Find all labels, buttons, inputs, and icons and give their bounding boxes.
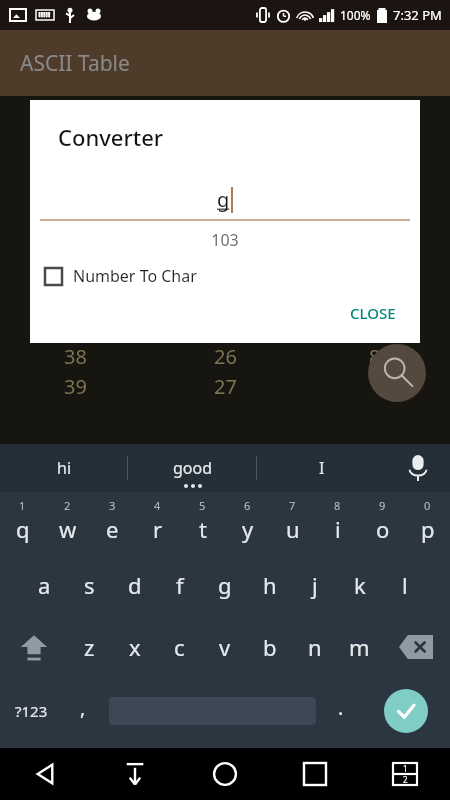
button[interactable]: j <box>292 554 337 616</box>
button[interactable]: Recent apps <box>270 748 360 800</box>
staticText: 8 <box>334 498 341 513</box>
staticText: , <box>80 694 86 721</box>
button[interactable]: b <box>247 616 292 678</box>
button[interactable]: n <box>292 616 337 678</box>
staticText: 6 <box>244 498 251 513</box>
staticText: w <box>59 514 77 544</box>
button[interactable]: x <box>112 616 157 678</box>
button[interactable]: d <box>112 554 157 616</box>
staticText: 26 <box>214 343 237 370</box>
staticText: p <box>421 514 435 544</box>
button[interactable]: Back <box>0 748 90 800</box>
button[interactable]: k <box>337 554 382 616</box>
staticText: 7:32 PM <box>393 6 442 24</box>
staticText: Number To Char <box>73 265 197 287</box>
button[interactable]: 2 <box>45 492 90 554</box>
button[interactable]: Number To Char <box>30 263 420 289</box>
staticText: ASCII Table <box>20 49 130 78</box>
button[interactable]: 8 <box>315 492 360 554</box>
staticText: z <box>84 632 95 662</box>
button[interactable]: 5 <box>180 492 225 554</box>
staticText: s <box>84 570 95 600</box>
staticText: hi <box>57 457 72 479</box>
staticText: 8 <box>369 343 381 370</box>
staticText: q <box>16 514 30 544</box>
staticText: i <box>335 514 341 544</box>
button[interactable]: Space <box>103 678 321 744</box>
button[interactable]: 0 <box>405 492 450 554</box>
staticText: 2 <box>64 498 71 513</box>
staticText: 3 <box>109 498 116 513</box>
staticText: a <box>38 570 51 600</box>
button[interactable]: h <box>247 554 292 616</box>
staticText: g <box>217 186 230 213</box>
staticText: 0 <box>424 498 431 513</box>
staticText: k <box>354 570 366 600</box>
button[interactable]: 9 <box>360 492 405 554</box>
staticText: g <box>218 570 232 600</box>
button[interactable]: s <box>67 554 112 616</box>
button[interactable]: Backspace <box>382 616 450 678</box>
button[interactable]: m <box>337 616 382 678</box>
staticText: I <box>319 457 325 479</box>
button[interactable]: z <box>67 616 112 678</box>
button[interactable]: 6 <box>225 492 270 554</box>
button[interactable]: a <box>22 554 67 616</box>
button[interactable]: 7 <box>270 492 315 554</box>
staticText: . <box>338 694 344 721</box>
button[interactable]: hi <box>0 444 128 492</box>
staticText: 5 <box>199 498 206 513</box>
button[interactable]: CLOSE <box>338 297 408 329</box>
button[interactable]: 3 <box>90 492 135 554</box>
button[interactable]: l <box>382 554 427 616</box>
staticText: o <box>376 514 390 544</box>
button[interactable]: , <box>63 678 103 744</box>
staticText: Converter <box>58 122 164 152</box>
staticText: b <box>263 632 277 662</box>
staticText: m <box>349 632 370 662</box>
button[interactable]: Split screen <box>360 748 450 800</box>
staticText: good <box>173 457 213 479</box>
staticText: 7 <box>289 498 296 513</box>
staticText: 38 <box>64 343 87 370</box>
staticText: 2 <box>403 774 408 785</box>
staticText: 103 <box>30 229 420 251</box>
staticText: 100% <box>340 7 371 23</box>
staticText: h <box>263 570 277 600</box>
button[interactable]: 4 <box>135 492 180 554</box>
button[interactable]: Enter <box>361 678 450 744</box>
button[interactable]: Home <box>180 748 270 800</box>
button[interactable]: v <box>202 616 247 678</box>
button[interactable]: Shift <box>0 616 67 678</box>
staticText: j <box>312 570 318 600</box>
button[interactable]: 1 <box>0 492 45 554</box>
staticText: u <box>286 514 300 544</box>
staticText: l <box>402 570 408 600</box>
staticText: 1 <box>19 498 26 513</box>
button[interactable]: f <box>157 554 202 616</box>
staticText: ?123 <box>15 701 48 721</box>
button[interactable]: Voice input <box>386 444 450 492</box>
staticText: v <box>219 632 231 662</box>
staticText: f <box>176 570 184 600</box>
button[interactable]: good <box>128 444 257 492</box>
button[interactable]: Hide keyboard <box>90 748 180 800</box>
staticText: r <box>153 514 163 544</box>
staticText: 1 <box>403 763 408 774</box>
button[interactable]: I <box>257 444 386 492</box>
button[interactable]: . <box>321 678 361 744</box>
staticText: x <box>129 632 141 662</box>
staticText: 9 <box>379 498 386 513</box>
staticText: ' <box>373 373 378 400</box>
button[interactable]: Search <box>368 344 426 402</box>
staticText: d <box>128 570 142 600</box>
staticText: n <box>308 632 322 662</box>
staticText: t <box>199 514 207 544</box>
button[interactable]: g <box>202 554 247 616</box>
staticText: 27 <box>214 373 237 400</box>
staticText: 39 <box>64 373 87 400</box>
staticText: 4 <box>154 498 161 513</box>
staticText: e <box>106 514 119 544</box>
button[interactable]: c <box>157 616 202 678</box>
button[interactable]: ?123 <box>0 678 63 744</box>
